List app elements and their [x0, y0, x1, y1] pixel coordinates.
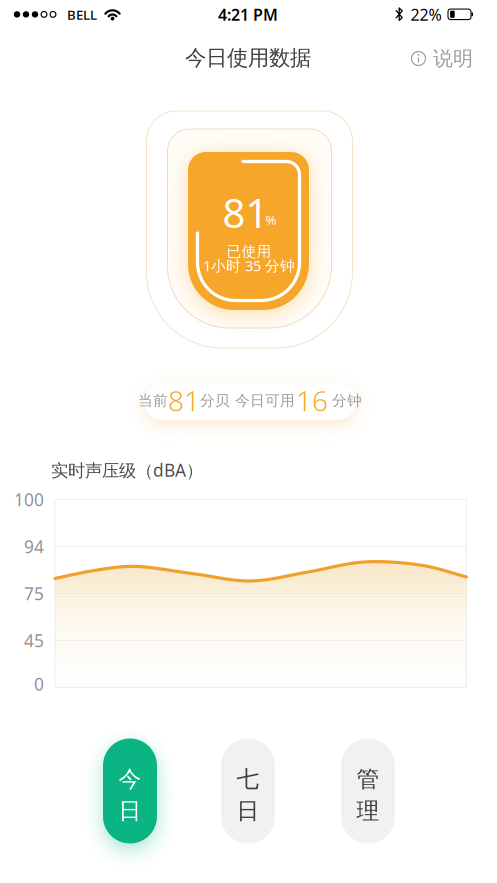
- staticText: 16: [296, 382, 328, 419]
- staticText: 22%: [410, 4, 441, 25]
- staticText: 日: [236, 797, 259, 825]
- staticText: 实时声压级（dBA）: [51, 458, 203, 481]
- staticText: 说明: [433, 46, 473, 71]
- staticText: 日: [118, 797, 141, 825]
- staticText: 81: [222, 186, 268, 239]
- staticText: 七: [236, 765, 259, 793]
- staticText: 管: [356, 765, 379, 793]
- button[interactable]: 说明: [411, 46, 473, 71]
- staticText: 分钟: [332, 391, 362, 409]
- staticText: 今: [118, 765, 141, 793]
- staticText: 分贝: [200, 391, 230, 409]
- staticText: 100: [14, 488, 44, 511]
- button[interactable]: 管: [341, 738, 395, 843]
- staticText: 理: [356, 797, 379, 825]
- staticText: 今日使用数据: [185, 45, 311, 71]
- staticText: 0: [34, 672, 44, 695]
- staticText: 94: [24, 535, 44, 558]
- staticText: 75: [24, 582, 44, 605]
- staticText: 1小时 35 分钟: [203, 256, 295, 275]
- staticText: 81: [168, 382, 200, 419]
- staticText: 45: [24, 629, 44, 652]
- staticText: %: [265, 211, 276, 228]
- button[interactable]: 今: [103, 738, 157, 843]
- staticText: 4:21 PM: [218, 4, 278, 25]
- staticText: 已使用: [226, 242, 271, 260]
- staticText: 今日可用: [235, 391, 295, 409]
- staticText: 当前: [138, 391, 168, 409]
- staticText: BELL: [67, 6, 97, 23]
- button[interactable]: 七: [221, 738, 275, 843]
